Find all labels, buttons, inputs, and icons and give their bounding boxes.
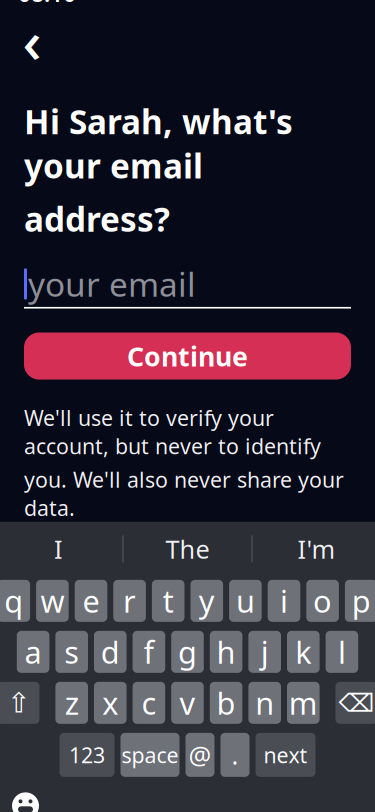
staticText: p xyxy=(352,580,371,621)
button[interactable]: u xyxy=(229,580,262,622)
staticText: ⌫ xyxy=(338,688,374,717)
staticText: k xyxy=(295,631,311,672)
staticText: d xyxy=(101,631,120,672)
staticText: a xyxy=(25,631,42,672)
button[interactable]: next xyxy=(255,733,315,777)
button[interactable]: n xyxy=(248,682,281,724)
staticText: f xyxy=(143,631,154,672)
staticText: The xyxy=(165,532,209,566)
button[interactable]: h xyxy=(210,631,242,673)
staticText: next xyxy=(263,741,307,769)
staticText: z xyxy=(65,682,79,723)
button[interactable]: x xyxy=(94,682,127,724)
button[interactable]: @ xyxy=(185,733,214,777)
button[interactable]: a xyxy=(17,631,49,673)
staticText: u xyxy=(236,580,255,621)
button[interactable]: j xyxy=(248,631,281,673)
staticText: q xyxy=(4,580,23,621)
staticText: I'm xyxy=(297,532,335,566)
staticText: your email xyxy=(28,262,196,306)
staticText: g xyxy=(178,631,197,672)
staticText: x xyxy=(102,682,118,723)
button[interactable]: o xyxy=(306,580,339,622)
staticText: l xyxy=(338,631,346,672)
staticText: s xyxy=(64,631,79,672)
staticText: ⇧ xyxy=(7,687,30,719)
button[interactable]: z xyxy=(55,682,88,724)
button[interactable]: Emoji keyboard xyxy=(3,784,47,812)
staticText: 08:10 xyxy=(18,0,76,8)
staticText: you. We'll also never share your data. xyxy=(24,465,344,522)
staticText: t xyxy=(163,580,174,621)
staticText: space xyxy=(121,741,178,769)
staticText: v xyxy=(179,682,195,723)
staticText: Hi Sarah, what's your email xyxy=(24,99,293,188)
staticText: @ xyxy=(188,738,211,772)
button[interactable]: t xyxy=(152,580,184,622)
staticText: I xyxy=(54,532,63,566)
staticText: y xyxy=(199,580,215,621)
staticText: e xyxy=(82,580,99,621)
staticText: w xyxy=(40,580,64,621)
staticText: m xyxy=(289,682,318,723)
button[interactable]: I'm xyxy=(252,522,375,576)
staticText: . xyxy=(231,738,238,772)
button[interactable]: w xyxy=(36,580,69,622)
staticText: 123 xyxy=(69,741,105,769)
staticText: r xyxy=(123,580,136,621)
button[interactable]: i xyxy=(268,580,300,622)
staticText: b xyxy=(217,682,236,723)
staticText: ‹ xyxy=(22,1,41,79)
button[interactable]: Continue xyxy=(24,332,351,379)
button[interactable]: 123 xyxy=(59,733,114,777)
button[interactable]: . xyxy=(220,733,249,777)
staticText: h xyxy=(217,631,236,672)
button[interactable]: Delete xyxy=(335,682,375,724)
button[interactable]: The xyxy=(123,522,251,576)
staticText: We'll use it to verify your account, but… xyxy=(24,403,321,460)
button[interactable]: g xyxy=(171,631,204,673)
button[interactable]: b xyxy=(210,682,242,724)
button[interactable]: f xyxy=(133,631,165,673)
staticText: Continue xyxy=(127,338,248,374)
button[interactable]: k xyxy=(287,631,320,673)
button[interactable]: s xyxy=(55,631,88,673)
button[interactable]: e xyxy=(75,580,107,622)
staticText: i xyxy=(280,580,288,621)
button[interactable]: m xyxy=(287,682,320,724)
staticText: o xyxy=(313,580,332,621)
button[interactable]: y xyxy=(190,580,223,622)
staticText: address? xyxy=(24,197,170,241)
button[interactable]: p xyxy=(345,580,375,622)
button[interactable]: Shift xyxy=(0,682,39,724)
button[interactable]: space xyxy=(120,733,179,777)
button[interactable]: l xyxy=(326,631,358,673)
button[interactable]: r xyxy=(113,580,146,622)
button[interactable]: v xyxy=(171,682,204,724)
staticText: j xyxy=(261,631,269,672)
button[interactable]: Back xyxy=(10,18,54,62)
staticText: c xyxy=(141,682,156,723)
button[interactable]: I xyxy=(0,522,122,576)
staticText: n xyxy=(255,682,274,723)
button[interactable]: d xyxy=(94,631,127,673)
button[interactable]: c xyxy=(133,682,165,724)
button[interactable]: q xyxy=(0,580,30,622)
